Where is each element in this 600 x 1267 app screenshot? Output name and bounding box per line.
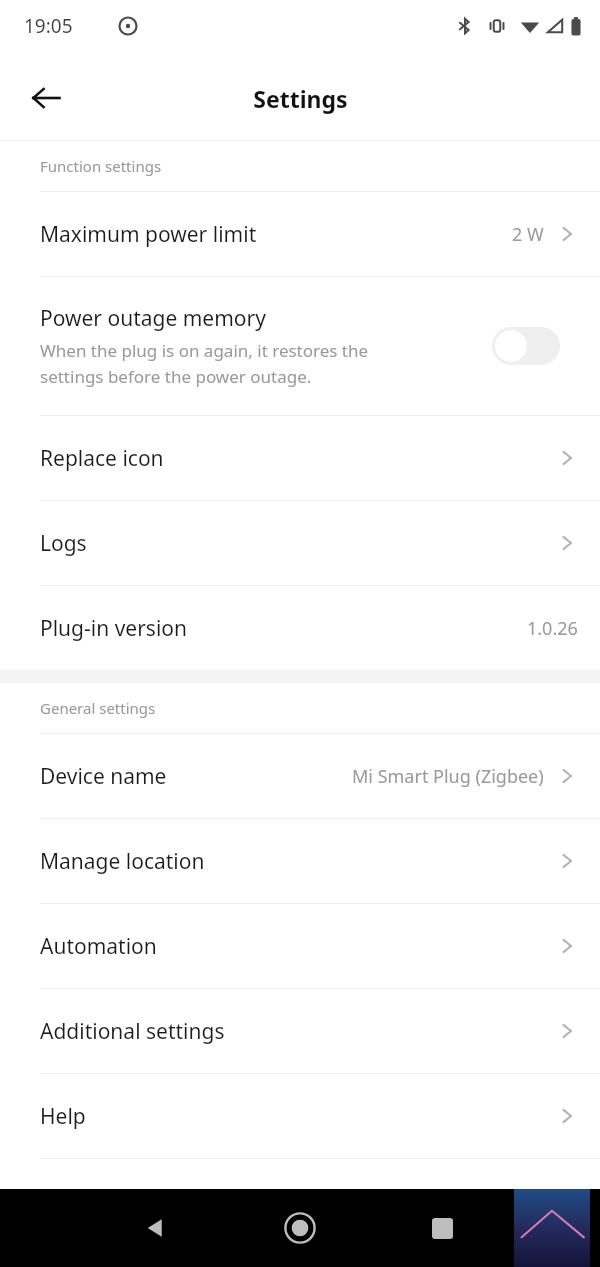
button[interactable]: Automation (0, 904, 600, 988)
button[interactable]: Plug-in version (0, 586, 600, 670)
staticText: Settings (253, 83, 348, 114)
staticText: Power outage memory (40, 304, 266, 333)
button[interactable]: Logs (0, 501, 600, 585)
button[interactable]: Back (128, 1200, 184, 1256)
staticText: Replace icon (40, 444, 164, 473)
button[interactable]: Power outage memory (0, 277, 600, 415)
staticText: 19:05 (24, 13, 73, 39)
button[interactable]: Back (20, 72, 72, 124)
staticText: Maximum power limit (40, 220, 257, 249)
staticText: Logs (40, 529, 87, 558)
staticText: Help (40, 1102, 86, 1131)
button[interactable]: Recent apps (414, 1200, 470, 1256)
button[interactable]: Legal information (0, 1159, 600, 1243)
staticText: Additional settings (40, 1017, 225, 1046)
staticText: Automation (40, 932, 157, 961)
button[interactable]: Home (271, 1199, 329, 1257)
staticText: Legal information (40, 1187, 216, 1216)
staticText: 1.0.26 (527, 616, 578, 641)
button[interactable]: Device name (0, 734, 600, 818)
button[interactable]: Replace icon (0, 416, 600, 500)
staticText: Plug-in version (40, 614, 187, 643)
button[interactable]: Additional settings (0, 989, 600, 1073)
staticText: When the plug is on again, it restores t… (40, 339, 369, 388)
button[interactable]: Manage location (0, 819, 600, 903)
staticText: Function settings (40, 156, 162, 176)
button[interactable]: Help (0, 1074, 600, 1158)
button[interactable]: Power outage memory toggle (492, 327, 560, 365)
staticText: General settings (40, 698, 156, 718)
staticText: Device name (40, 762, 167, 791)
button[interactable]: Maximum power limit (0, 192, 600, 276)
staticText: 2 W (512, 222, 544, 247)
staticText: Mi Smart Plug (Zigbee) (352, 764, 544, 789)
staticText: Manage location (40, 847, 205, 876)
